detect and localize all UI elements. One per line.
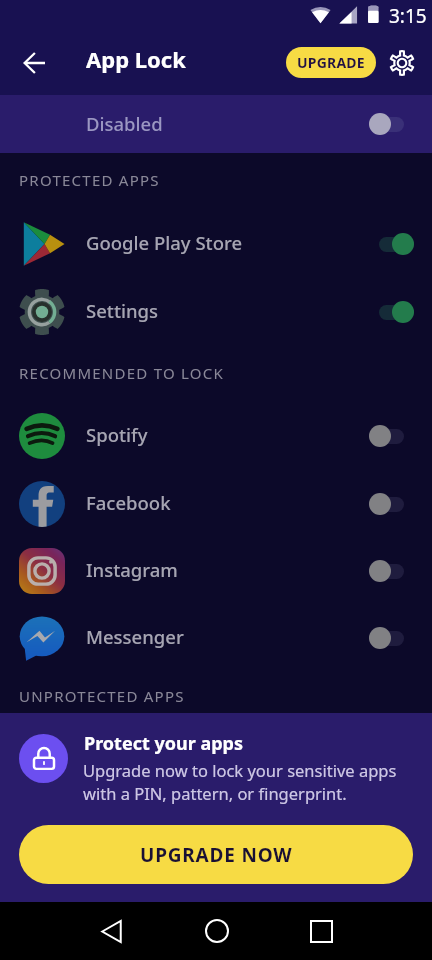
button[interactable]: Enabled	[369, 231, 414, 257]
button[interactable]: Spotify	[0, 402, 432, 470]
button[interactable]: Messenger	[0, 604, 432, 672]
button[interactable]: Settings	[383, 44, 421, 82]
button[interactable]: Disabled	[369, 558, 414, 584]
staticText: Messenger	[86, 624, 184, 649]
button[interactable]: Instagram	[0, 537, 432, 605]
button[interactable]: Disabled	[0, 95, 432, 153]
staticText: UPGRADE NOW	[140, 842, 293, 868]
button[interactable]: Disabled	[369, 423, 414, 449]
staticText: App Lock	[86, 44, 186, 74]
button[interactable]: UPGRADE	[286, 47, 376, 78]
button[interactable]: Recent apps	[295, 905, 347, 957]
staticText: Spotify	[86, 422, 148, 447]
staticText: Settings	[86, 298, 159, 323]
staticText: UNPROTECTED APPS	[19, 686, 185, 706]
staticText: Google Play Store	[86, 230, 243, 255]
button[interactable]: Back	[12, 41, 56, 85]
staticText: Disabled	[86, 111, 163, 136]
staticText: UPGRADE	[297, 53, 365, 72]
button[interactable]: Back	[85, 905, 137, 957]
button[interactable]: Disabled	[369, 111, 414, 137]
button[interactable]: Home	[191, 905, 243, 957]
staticText: Upgrade now to lock your sensitive apps …	[83, 759, 397, 805]
staticText: Instagram	[86, 557, 178, 582]
button[interactable]: Google Play Store	[0, 210, 432, 278]
staticText: 3:15	[389, 3, 427, 29]
staticText: Protect your apps	[84, 731, 243, 756]
button[interactable]: Disabled	[369, 491, 414, 517]
button[interactable]: UPGRADE NOW	[19, 825, 413, 884]
button[interactable]: Enabled	[369, 299, 414, 325]
staticText: RECOMMENDED TO LOCK	[19, 363, 225, 383]
staticText: Facebook	[86, 490, 171, 515]
button[interactable]: Settings	[0, 278, 432, 346]
button[interactable]: Disabled	[369, 625, 414, 651]
staticText: PROTECTED APPS	[19, 170, 160, 190]
button[interactable]: Facebook	[0, 470, 432, 538]
